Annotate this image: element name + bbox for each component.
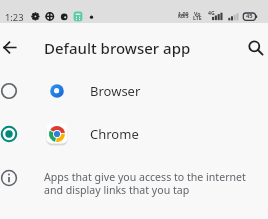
staticText: Vo bbox=[194, 10, 201, 17]
staticText: Browser bbox=[90, 82, 141, 100]
staticText: 45 bbox=[246, 12, 253, 20]
button[interactable]: Back bbox=[0, 29, 27, 65]
staticText: Chrome bbox=[90, 125, 139, 143]
staticText: 4G bbox=[208, 9, 215, 16]
button[interactable]: Browser bbox=[0, 69, 268, 112]
staticText: 1.00 bbox=[178, 10, 189, 17]
staticText: Default browser app bbox=[44, 38, 191, 58]
button[interactable]: Chrome bbox=[0, 112, 268, 155]
staticText: KB/S bbox=[178, 13, 189, 19]
staticText: 1:23 bbox=[5, 11, 24, 24]
button[interactable]: Search bbox=[239, 31, 268, 65]
staticText: LTE bbox=[193, 14, 202, 21]
staticText: Apps that give you access to the interne… bbox=[44, 170, 252, 197]
